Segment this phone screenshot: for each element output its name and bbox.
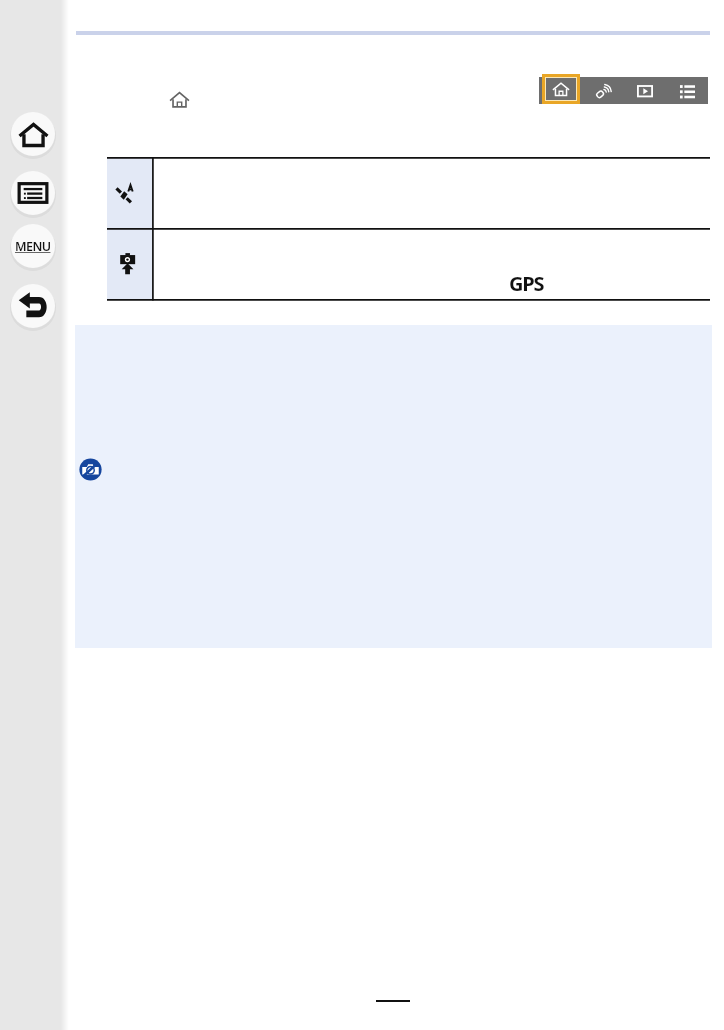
button[interactable]: Not available [79, 458, 102, 481]
button[interactable]: Home selected [542, 74, 580, 104]
button[interactable]: Home [539, 77, 581, 104]
button[interactable]: Menu [11, 224, 55, 268]
button[interactable]: Back [11, 284, 55, 328]
button[interactable]: Menu list [666, 77, 708, 104]
button[interactable]: Home [11, 112, 55, 156]
staticText: GPS [509, 270, 544, 297]
button[interactable]: Contents [11, 171, 55, 215]
button[interactable]: Playback [624, 77, 666, 104]
staticText: MENU [15, 238, 51, 255]
button[interactable]: Wi-Fi remote [581, 77, 624, 104]
